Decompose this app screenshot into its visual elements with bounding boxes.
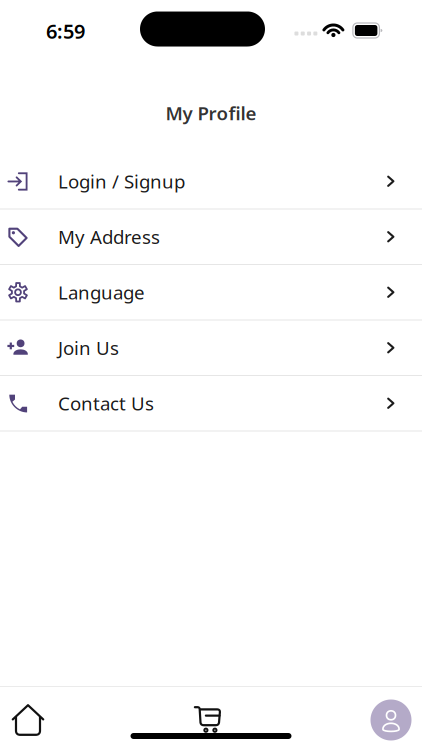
- button[interactable]: Login / Signup: [0, 154, 422, 209]
- button[interactable]: Join Us: [0, 320, 422, 376]
- staticText: Language: [58, 280, 145, 305]
- staticText: My Address: [58, 224, 160, 249]
- button[interactable]: Profile: [363, 697, 419, 743]
- button[interactable]: Home: [0, 697, 56, 743]
- button[interactable]: Contact Us: [0, 376, 422, 431]
- staticText: 6:59: [46, 18, 85, 44]
- staticText: Login / Signup: [58, 169, 185, 194]
- button[interactable]: Cart: [181, 697, 237, 743]
- button[interactable]: My Address: [0, 209, 422, 265]
- button[interactable]: Language: [0, 265, 422, 320]
- staticText: Join Us: [58, 335, 119, 360]
- staticText: My Profile: [165, 101, 256, 125]
- staticText: Contact Us: [58, 391, 154, 416]
